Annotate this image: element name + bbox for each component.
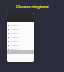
button[interactable] [7, 13, 34, 22]
button[interactable] [7, 35, 34, 39]
button[interactable] [7, 47, 34, 51]
button[interactable] [7, 23, 34, 27]
button[interactable] [7, 43, 34, 47]
staticText: Choose ringtone [16, 4, 49, 9]
button[interactable] [7, 39, 34, 43]
button[interactable] [7, 31, 34, 35]
button[interactable] [7, 27, 34, 31]
